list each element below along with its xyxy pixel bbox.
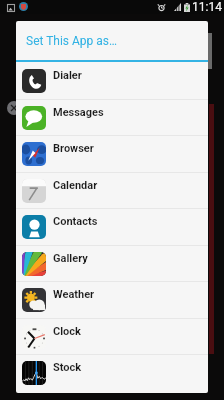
button[interactable]: Calendar xyxy=(16,172,208,209)
staticText: Browser xyxy=(53,142,94,155)
staticText: Dialer xyxy=(53,69,82,82)
button[interactable]: Clock xyxy=(16,318,208,355)
button[interactable]: Browser xyxy=(16,135,208,172)
button[interactable]: Stock xyxy=(16,354,208,391)
button[interactable]: Contacts xyxy=(16,208,208,245)
button[interactable]: Dialer xyxy=(16,62,208,99)
staticText: Contacts xyxy=(53,215,98,228)
staticText: Gallery xyxy=(53,252,88,265)
staticText: Weather xyxy=(53,288,95,301)
button[interactable]: Messages xyxy=(16,99,208,136)
button[interactable]: Weather xyxy=(16,281,208,318)
staticText: Set This App as… xyxy=(26,34,118,48)
staticText: Calendar xyxy=(53,179,98,192)
staticText: Clock xyxy=(53,325,81,338)
staticText: Messages xyxy=(53,106,104,119)
button[interactable]: Gallery xyxy=(16,245,208,282)
button[interactable]: Close xyxy=(7,101,21,115)
staticText: 11:14 xyxy=(192,0,222,14)
staticText: Stock xyxy=(53,361,82,374)
